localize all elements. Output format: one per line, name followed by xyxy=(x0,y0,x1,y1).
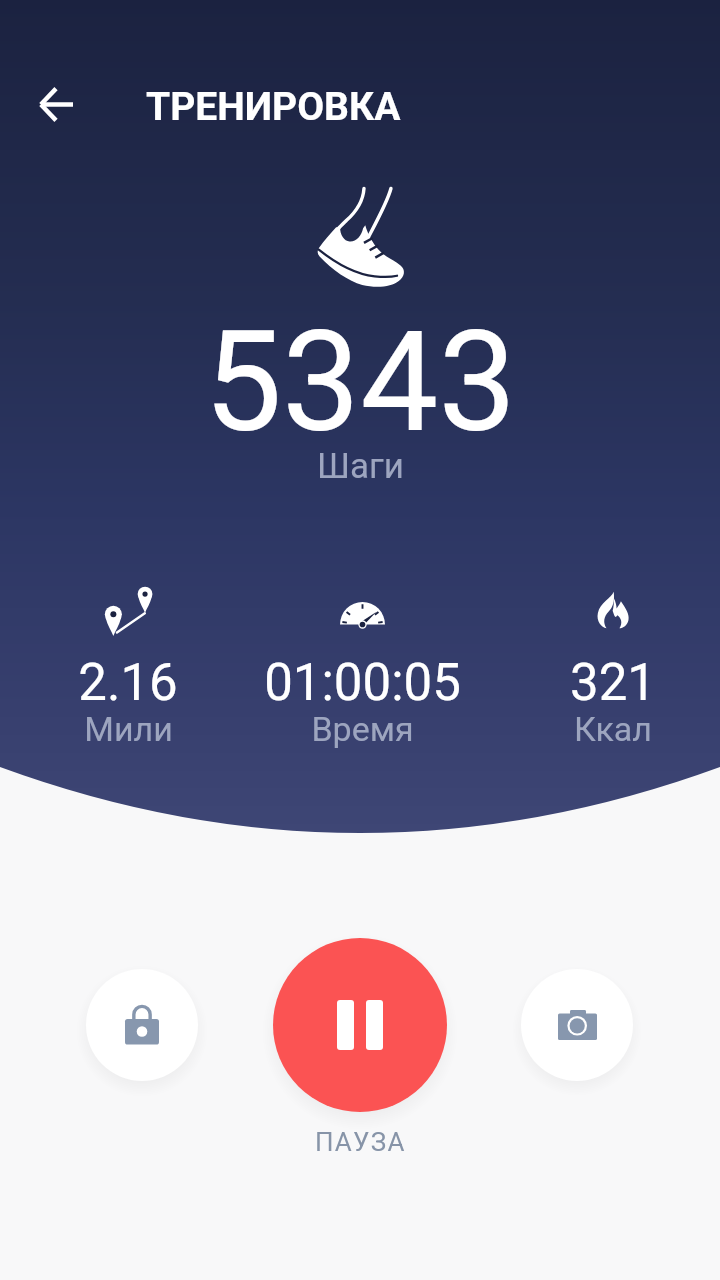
staticText: Шаги xyxy=(317,446,404,487)
button[interactable]: Pause xyxy=(273,938,447,1112)
staticText: Время xyxy=(311,709,414,749)
staticText: 5343 xyxy=(204,301,517,464)
button[interactable]: Camera xyxy=(521,969,633,1081)
staticText: ПАУЗА xyxy=(315,1127,406,1157)
staticText: 2.16 xyxy=(78,653,178,713)
button[interactable]: Lock xyxy=(86,969,198,1081)
staticText: Мили xyxy=(84,709,173,749)
staticText: ТРЕНИРОВКА xyxy=(146,84,401,130)
staticText: 01:00:05 xyxy=(264,653,461,713)
staticText: Ккал xyxy=(574,709,652,749)
button[interactable]: Back xyxy=(23,71,89,137)
staticText: 321 xyxy=(570,653,656,713)
